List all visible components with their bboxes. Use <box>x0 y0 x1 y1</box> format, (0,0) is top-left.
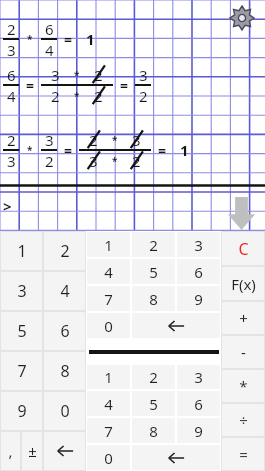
button[interactable]: 0 <box>87 313 130 338</box>
staticText: = <box>64 30 73 49</box>
button[interactable]: 2 <box>132 365 175 389</box>
staticText: 1 <box>17 240 27 262</box>
button[interactable]: 3 <box>177 232 220 257</box>
button[interactable]: , <box>1 432 20 470</box>
staticText: = <box>64 141 73 160</box>
button[interactable]: + <box>222 302 264 334</box>
staticText: = <box>158 141 167 160</box>
button[interactable]: 6 <box>177 259 220 284</box>
staticText: 2 <box>94 65 103 84</box>
staticText: 2 <box>149 235 158 255</box>
staticText: > <box>3 196 12 216</box>
staticText: 6 <box>60 320 70 342</box>
staticText: 9 <box>17 400 27 422</box>
button[interactable]: ± <box>22 432 42 470</box>
button[interactable]: - <box>222 336 264 368</box>
staticText: 3 <box>7 151 16 170</box>
staticText: * <box>74 68 80 82</box>
button[interactable]: Backspace <box>132 445 220 470</box>
staticText: 8 <box>149 421 158 441</box>
staticText: 0 <box>104 448 113 468</box>
button[interactable]: 3 <box>177 365 220 389</box>
staticText: 8 <box>149 289 158 309</box>
button[interactable]: 4 <box>44 272 85 310</box>
button[interactable]: 6 <box>177 391 220 416</box>
staticText: 4 <box>45 40 54 59</box>
button[interactable]: 5 <box>132 391 175 416</box>
staticText: * <box>112 154 118 168</box>
staticText: 7 <box>104 421 113 441</box>
button[interactable]: 9 <box>1 392 42 430</box>
button[interactable]: 7 <box>87 418 130 443</box>
staticText: 9 <box>194 289 203 309</box>
button[interactable]: C <box>222 232 264 265</box>
staticText: 2 <box>94 86 103 105</box>
staticText: + <box>239 308 248 328</box>
staticText: * <box>239 376 248 396</box>
staticText: 8 <box>60 360 70 382</box>
button[interactable]: 5 <box>132 259 175 284</box>
staticText: 5 <box>17 320 27 342</box>
staticText: 6 <box>7 65 16 84</box>
button[interactable]: 8 <box>44 352 85 390</box>
button[interactable]: Settings <box>229 5 255 31</box>
button[interactable]: 4 <box>87 259 130 284</box>
staticText: 6 <box>194 262 203 282</box>
staticText: 9 <box>194 421 203 441</box>
staticText: = <box>120 76 129 95</box>
staticText: 1 <box>104 367 113 387</box>
staticText: 6 <box>45 19 54 38</box>
button[interactable]: Backspace <box>132 313 220 338</box>
staticText: 0 <box>104 316 113 336</box>
staticText: 2 <box>132 151 141 170</box>
button[interactable]: F(x) <box>222 267 264 300</box>
button[interactable]: 4 <box>87 391 130 416</box>
staticText: 1 <box>180 140 189 160</box>
button[interactable]: 7 <box>87 286 130 311</box>
button[interactable]: 5 <box>1 312 42 350</box>
staticText: ± <box>28 441 37 461</box>
button[interactable]: Scroll down <box>227 197 256 230</box>
staticText: 2 <box>51 86 60 105</box>
button[interactable]: 2 <box>132 232 175 257</box>
staticText: 2 <box>139 86 148 105</box>
button[interactable]: = <box>222 438 264 470</box>
staticText: 1 <box>86 29 95 49</box>
button[interactable]: 7 <box>1 352 42 390</box>
button[interactable]: 9 <box>177 286 220 311</box>
staticText: 7 <box>17 360 27 382</box>
staticText: 2 <box>7 19 16 38</box>
staticText: 2 <box>60 240 70 262</box>
button[interactable]: Backspace <box>44 432 85 470</box>
button[interactable]: 1 <box>87 365 130 389</box>
staticText: 2 <box>149 367 158 387</box>
staticText: 3 <box>132 130 141 149</box>
button[interactable]: ÷ <box>222 404 264 436</box>
button[interactable]: 1 <box>87 232 130 257</box>
staticText: = <box>239 444 248 464</box>
staticText: 3 <box>194 235 203 255</box>
staticText: 4 <box>104 262 113 282</box>
staticText: 3 <box>7 40 16 59</box>
staticText: 4 <box>60 280 70 302</box>
button[interactable]: 3 <box>1 272 42 310</box>
button[interactable]: 1 <box>1 232 42 270</box>
staticText: 3 <box>139 65 148 84</box>
staticText: = <box>26 76 35 95</box>
button[interactable]: 8 <box>132 286 175 311</box>
button[interactable]: 0 <box>87 445 130 470</box>
staticText: 4 <box>104 394 113 414</box>
staticText: 2 <box>89 130 98 149</box>
button[interactable]: 9 <box>177 418 220 443</box>
button[interactable]: 8 <box>132 418 175 443</box>
staticText: 0 <box>60 400 70 422</box>
staticText: 3 <box>17 280 27 302</box>
button[interactable]: 2 <box>44 232 85 270</box>
staticText: F(x) <box>231 274 256 294</box>
staticText: 7 <box>104 289 113 309</box>
button[interactable]: 6 <box>44 312 85 350</box>
button[interactable]: 0 <box>44 392 85 430</box>
button[interactable]: * <box>222 370 264 402</box>
staticText: * <box>27 143 33 157</box>
staticText: 4 <box>7 86 16 105</box>
